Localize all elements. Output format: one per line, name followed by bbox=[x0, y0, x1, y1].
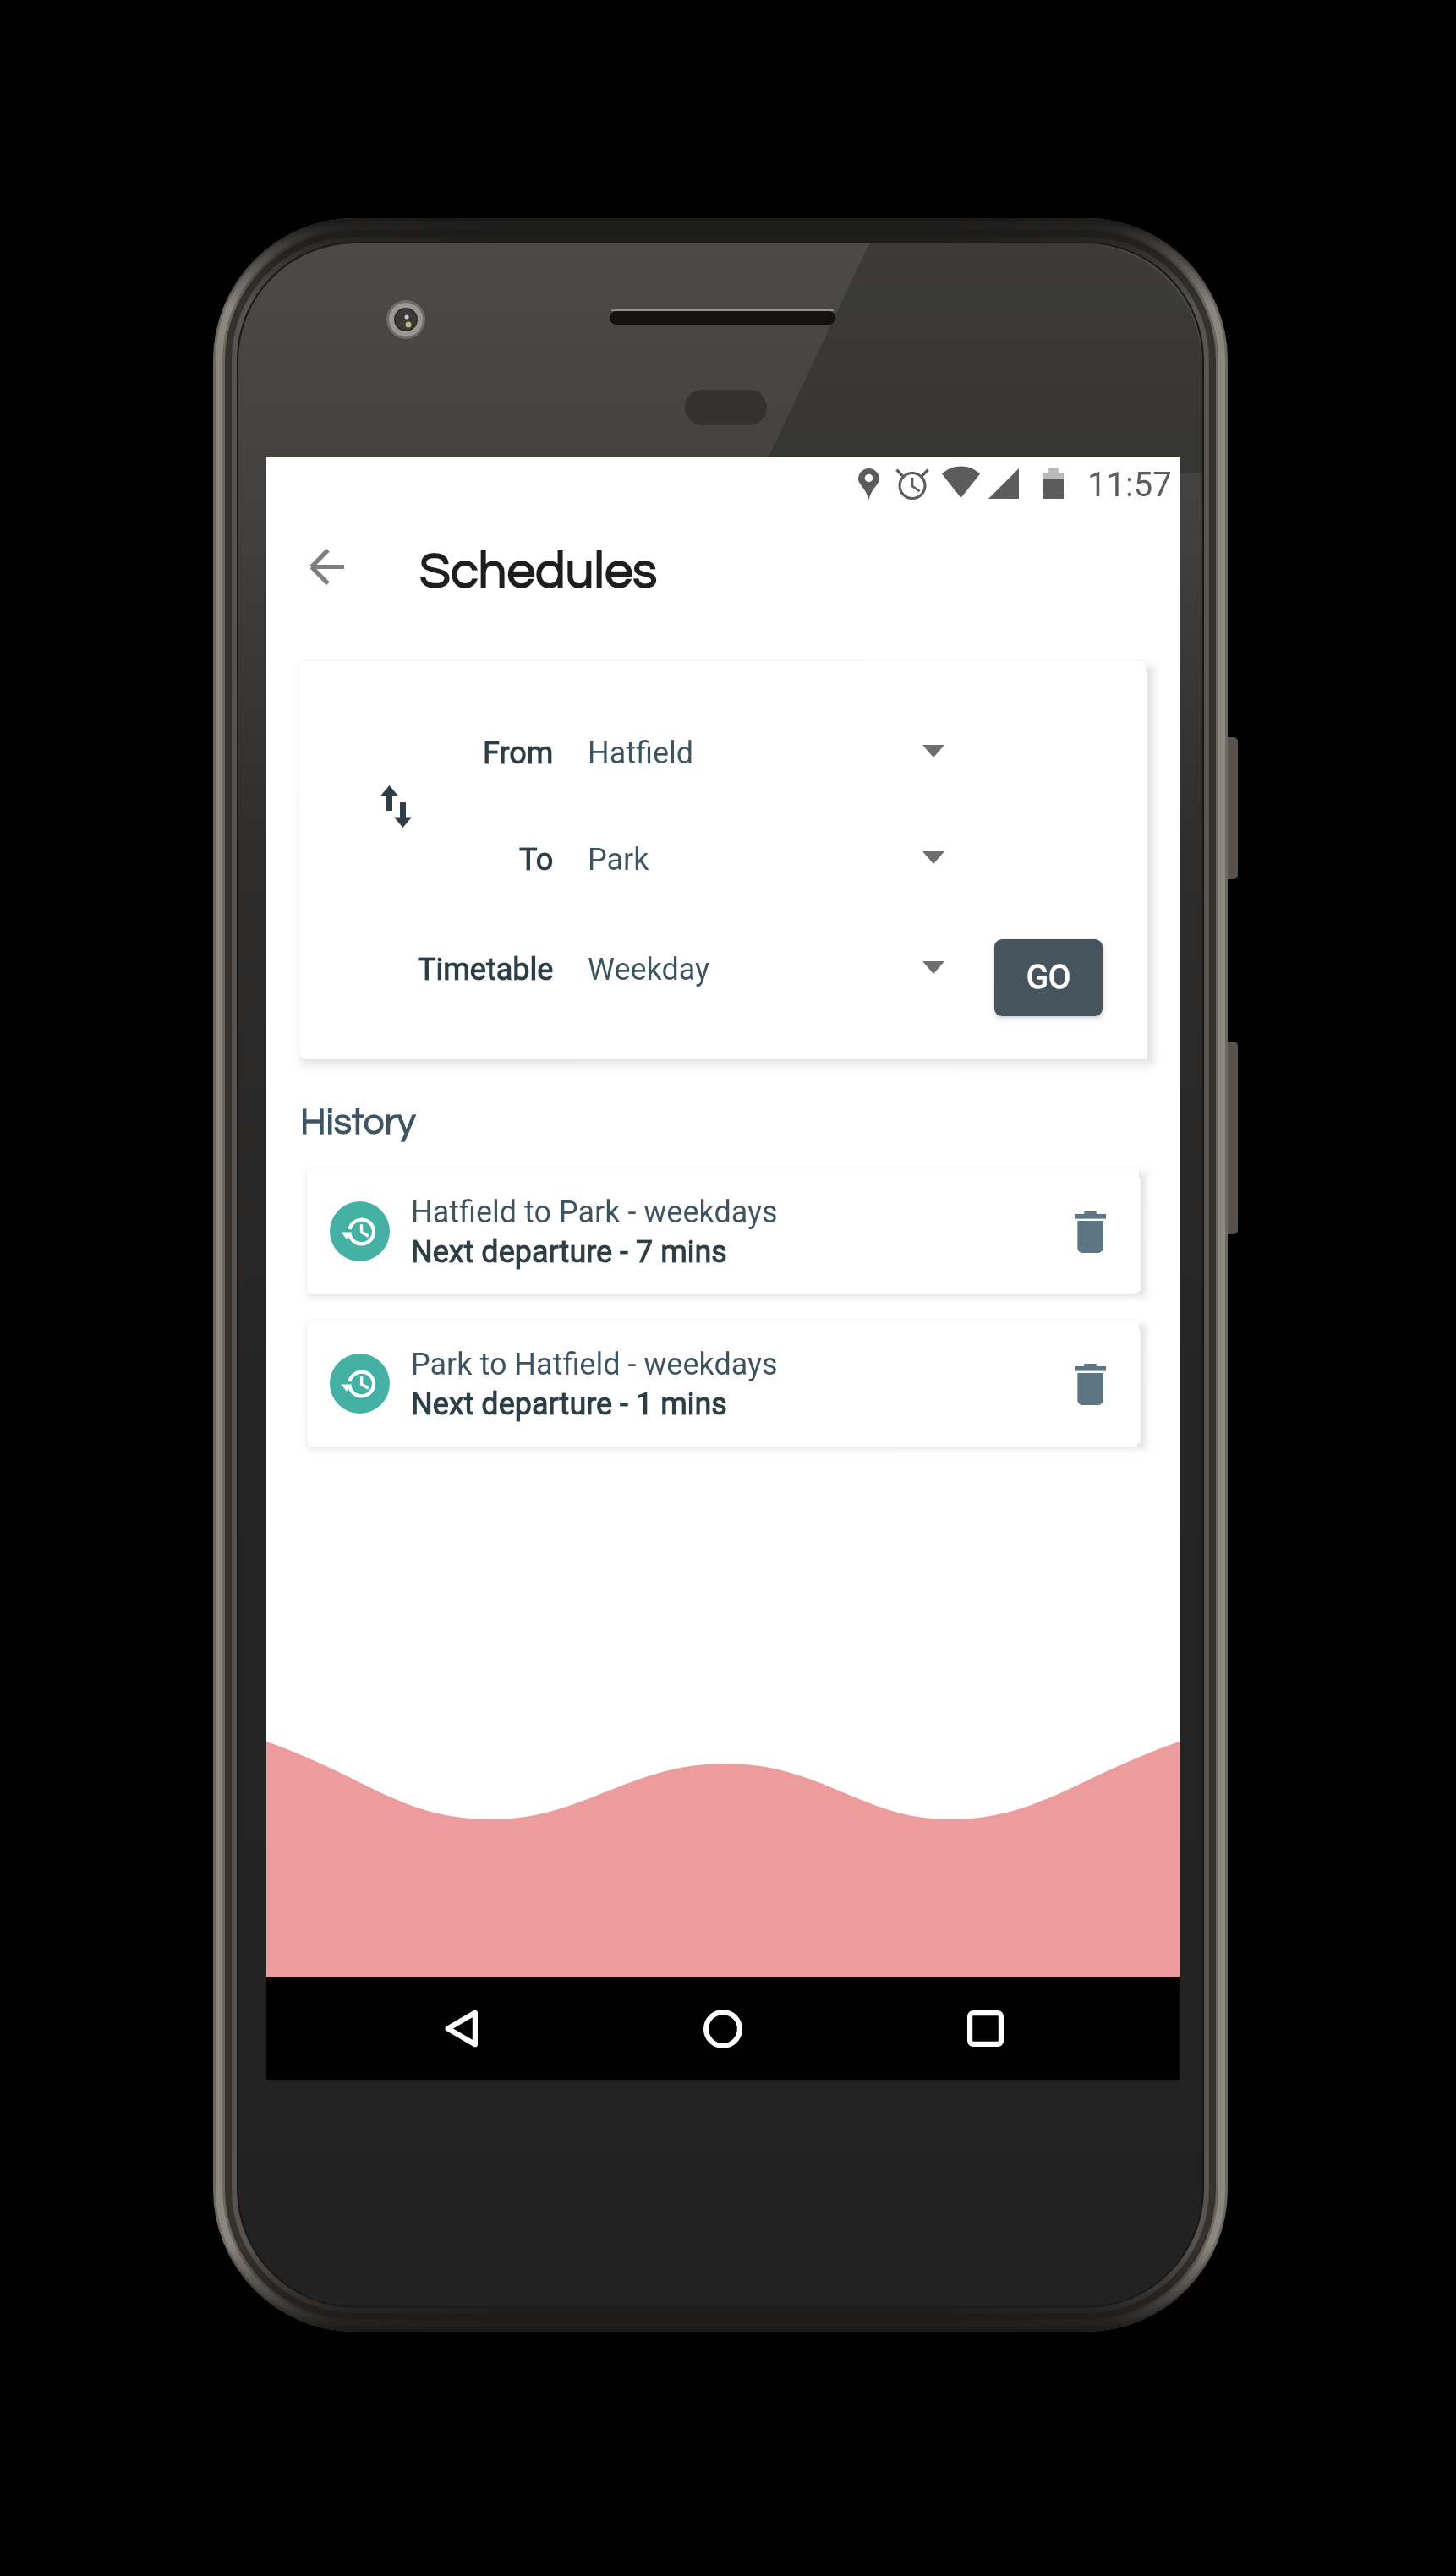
staticText: 11:57 bbox=[1087, 465, 1172, 505]
staticText: Timetable bbox=[418, 952, 554, 987]
button[interactable]: Open From dropdown bbox=[891, 724, 976, 778]
button[interactable]: Delete bbox=[1049, 1344, 1130, 1424]
button[interactable]: Hatfield to Park - weekdays bbox=[307, 1168, 1139, 1294]
button[interactable]: Swap from and to bbox=[355, 764, 437, 849]
button[interactable]: Delete bbox=[1049, 1192, 1130, 1272]
staticText: History bbox=[300, 1103, 416, 1141]
staticText: Hatfield bbox=[588, 736, 694, 771]
staticText: GO bbox=[1026, 959, 1071, 997]
staticText: History bbox=[300, 1103, 416, 1141]
staticText: Schedules bbox=[419, 546, 658, 599]
button[interactable]: Recents bbox=[934, 1977, 1036, 2080]
staticText: Park to Hatfield - weekdays bbox=[411, 1347, 778, 1382]
staticText: From bbox=[483, 736, 554, 771]
staticText: Hatfield to Park - weekdays bbox=[411, 1195, 778, 1230]
button[interactable]: Open Timetable dropdown bbox=[891, 940, 976, 994]
button[interactable]: Home bbox=[672, 1977, 774, 2080]
button[interactable]: Park to Hatfield - weekdays bbox=[307, 1321, 1139, 1447]
staticText: Park bbox=[588, 842, 649, 878]
staticText: Next departure - 7 mins bbox=[411, 1234, 727, 1270]
staticText: Weekday bbox=[588, 952, 710, 987]
button[interactable]: GO bbox=[994, 939, 1103, 1016]
button[interactable]: Open To dropdown bbox=[891, 830, 976, 884]
staticText: Next departure - 1 mins bbox=[411, 1386, 727, 1422]
button[interactable]: Back bbox=[287, 526, 368, 607]
button[interactable]: Back bbox=[410, 1977, 512, 2080]
staticText: Schedules bbox=[419, 546, 658, 599]
staticText: To bbox=[519, 842, 554, 878]
